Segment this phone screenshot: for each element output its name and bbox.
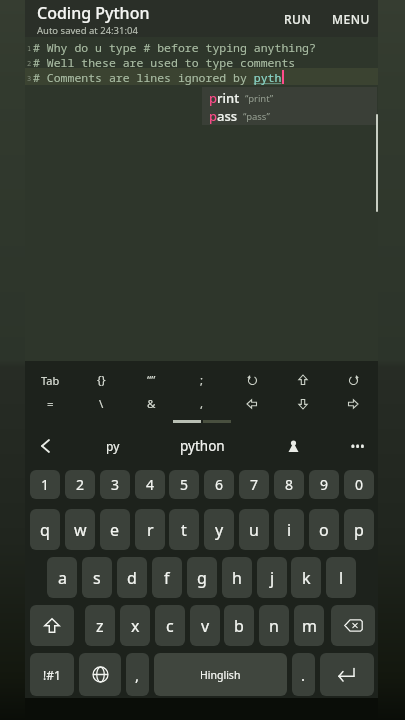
staticText: “” bbox=[147, 372, 156, 388]
button[interactable] bbox=[281, 368, 325, 392]
staticText: 3 bbox=[111, 475, 120, 494]
staticText: f bbox=[164, 567, 170, 589]
button[interactable]: ; bbox=[180, 368, 224, 392]
button[interactable]: 7 bbox=[239, 470, 269, 499]
button[interactable]: t bbox=[169, 509, 199, 550]
button[interactable]: py bbox=[88, 433, 138, 459]
staticText: w bbox=[74, 519, 87, 541]
button[interactable]: !#1 bbox=[30, 653, 74, 696]
button[interactable]: r bbox=[135, 509, 165, 550]
button[interactable]: 2 bbox=[65, 470, 95, 499]
button[interactable]: z bbox=[85, 605, 115, 646]
button[interactable]: ••• bbox=[343, 433, 373, 459]
button[interactable]: c bbox=[155, 605, 185, 646]
staticText: o bbox=[319, 519, 329, 541]
staticText: . bbox=[301, 665, 306, 685]
button[interactable]: RUN bbox=[278, 5, 318, 33]
staticText: q bbox=[40, 519, 50, 541]
staticText: e bbox=[110, 519, 120, 541]
staticText: d bbox=[127, 567, 137, 589]
button[interactable] bbox=[79, 653, 121, 696]
staticText: h bbox=[232, 567, 242, 589]
staticText: ; bbox=[200, 372, 204, 388]
staticText: j bbox=[270, 567, 275, 589]
button[interactable]: i bbox=[274, 509, 304, 550]
staticText: m bbox=[302, 615, 317, 637]
button[interactable]: v bbox=[190, 605, 220, 646]
button[interactable]: o bbox=[309, 509, 339, 550]
button[interactable]: “” bbox=[129, 368, 173, 392]
button[interactable]: w bbox=[65, 509, 95, 550]
button[interactable] bbox=[30, 433, 60, 459]
staticText: 2 bbox=[76, 475, 85, 494]
staticText: = bbox=[47, 396, 54, 412]
button[interactable]: 4 bbox=[135, 470, 165, 499]
button[interactable]: h bbox=[222, 557, 252, 598]
staticText: {} bbox=[97, 372, 106, 388]
button[interactable]: 3 bbox=[100, 470, 130, 499]
button[interactable]: . bbox=[292, 653, 315, 696]
staticText: 8 bbox=[285, 475, 294, 494]
staticText: ••• bbox=[351, 439, 366, 453]
staticText: 7 bbox=[250, 475, 259, 494]
button[interactable]: u bbox=[239, 509, 269, 550]
button[interactable]: 0 bbox=[344, 470, 374, 499]
staticText: Tab bbox=[41, 373, 60, 388]
staticText: r bbox=[147, 519, 154, 541]
button[interactable]: y bbox=[204, 509, 234, 550]
button[interactable]: g bbox=[187, 557, 217, 598]
staticText: b bbox=[234, 615, 244, 637]
button[interactable]: m bbox=[294, 605, 324, 646]
button[interactable]: 5 bbox=[169, 470, 199, 499]
button[interactable]: 8 bbox=[274, 470, 304, 499]
button[interactable]: , bbox=[180, 392, 224, 416]
button[interactable]: MENU bbox=[326, 5, 376, 33]
button[interactable]: python bbox=[167, 432, 237, 460]
staticText: 4 bbox=[146, 475, 155, 494]
button[interactable]: p bbox=[344, 509, 374, 550]
staticText: v bbox=[201, 615, 210, 637]
button[interactable]: = bbox=[28, 392, 72, 416]
button[interactable] bbox=[230, 368, 274, 392]
button[interactable] bbox=[230, 392, 274, 416]
button[interactable]: d bbox=[117, 557, 147, 598]
button[interactable] bbox=[30, 605, 74, 646]
button[interactable]: Hinglish bbox=[154, 653, 287, 696]
button[interactable]: {} bbox=[79, 368, 123, 392]
button[interactable]: f bbox=[152, 557, 182, 598]
button[interactable]: a bbox=[47, 557, 77, 598]
button[interactable] bbox=[331, 392, 375, 416]
staticText: l bbox=[339, 567, 344, 589]
button[interactable]: 6 bbox=[204, 470, 234, 499]
staticText: y bbox=[215, 519, 224, 541]
button[interactable] bbox=[331, 605, 375, 646]
button[interactable]: b bbox=[224, 605, 254, 646]
staticText: # Well these are used to type comments bbox=[33, 55, 296, 71]
button[interactable]: s bbox=[82, 557, 112, 598]
staticText: n bbox=[269, 615, 279, 637]
staticText: u bbox=[249, 519, 259, 541]
staticText: s bbox=[93, 567, 101, 589]
staticText: 9 bbox=[320, 475, 329, 494]
staticText: c bbox=[166, 615, 174, 637]
staticText: py bbox=[106, 438, 120, 454]
button[interactable]: l bbox=[326, 557, 356, 598]
button[interactable]: n bbox=[259, 605, 289, 646]
button[interactable]: j bbox=[257, 557, 287, 598]
button[interactable] bbox=[320, 653, 374, 696]
button[interactable]: 9 bbox=[309, 470, 339, 499]
button[interactable] bbox=[281, 392, 325, 416]
button[interactable] bbox=[331, 368, 375, 392]
button[interactable]: 1 bbox=[30, 470, 60, 499]
button[interactable]: x bbox=[120, 605, 150, 646]
staticText: Auto saved at 24:31:04 bbox=[37, 24, 138, 37]
button[interactable]: q bbox=[30, 509, 60, 550]
button[interactable]: Tab bbox=[28, 368, 72, 392]
staticText: 0 bbox=[355, 475, 364, 494]
button[interactable]: \ bbox=[79, 392, 123, 416]
button[interactable]: e bbox=[100, 509, 130, 550]
button[interactable]: & bbox=[129, 392, 173, 416]
button[interactable] bbox=[278, 433, 308, 459]
button[interactable]: , bbox=[126, 653, 149, 696]
button[interactable]: k bbox=[291, 557, 321, 598]
